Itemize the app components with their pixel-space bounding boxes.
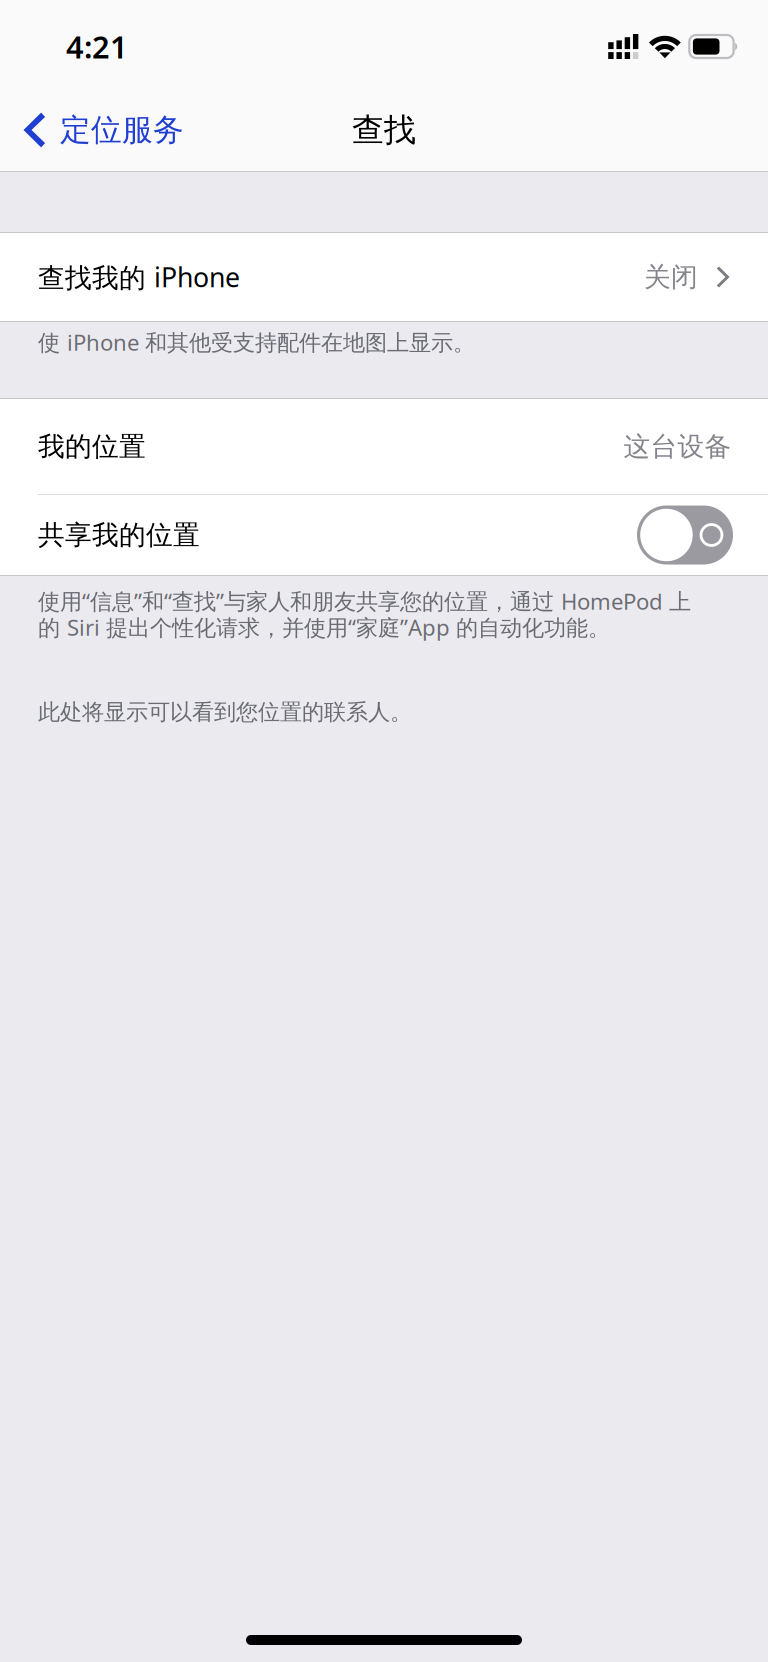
staticText: 查找我的 iPhone xyxy=(38,259,240,295)
staticText: 共享我的位置 xyxy=(38,519,200,551)
staticText: 我的位置 xyxy=(38,430,146,463)
staticText: 4:21 xyxy=(66,26,128,67)
staticText: 此处将显示可以看到您位置的联系人。 xyxy=(38,698,412,726)
staticText: 关闭 xyxy=(644,261,698,293)
button[interactable]: 共享我的位置 xyxy=(0,495,768,575)
staticText: 使 iPhone 和其他受支持配件在地图上显示。 xyxy=(38,327,475,357)
button[interactable]: 我的位置 xyxy=(0,399,768,494)
staticText: 使用“信息”和“查找”与家人和朋友共享您的位置，通过 HomePod 上的 Si… xyxy=(38,586,691,642)
button[interactable]: 定位服务 xyxy=(0,88,198,172)
button[interactable]: 查找我的 iPhone xyxy=(0,233,768,321)
staticText: 这台设备 xyxy=(623,430,731,463)
staticText: 定位服务 xyxy=(60,111,184,149)
staticText: 查找 xyxy=(352,110,416,150)
